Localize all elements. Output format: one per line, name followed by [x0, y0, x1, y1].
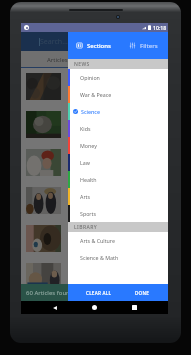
staticText: NEWS — [74, 61, 90, 68]
button[interactable]: Arts & Culture — [68, 232, 168, 249]
button[interactable]: Law — [68, 154, 168, 171]
staticText: Law — [80, 159, 90, 166]
button[interactable]: Back — [48, 301, 61, 314]
button[interactable]: Filters — [118, 32, 168, 59]
staticText: War & Peace — [80, 91, 112, 98]
staticText: Sections — [87, 42, 111, 50]
button[interactable]: War & Peace — [68, 86, 168, 103]
button[interactable]: Science — [68, 103, 168, 120]
staticText: Opinion — [80, 74, 100, 81]
staticText: Filters — [140, 42, 158, 50]
staticText: DONE — [135, 290, 150, 296]
staticText: Science — [81, 108, 100, 115]
staticText: Topics — [122, 56, 140, 64]
button[interactable]: Sections — [68, 32, 118, 59]
button[interactable]: Sports — [68, 205, 168, 222]
button[interactable]: Arts — [68, 188, 168, 205]
button[interactable]: Recents — [128, 301, 141, 314]
button[interactable]: Money — [68, 137, 168, 154]
staticText: Articles — [47, 56, 68, 64]
button[interactable]: Health — [68, 171, 168, 188]
button[interactable]: Science & Math — [68, 249, 168, 266]
staticText: Search… — [40, 37, 68, 47]
staticText: Arts — [80, 193, 91, 200]
button[interactable]: DONE — [131, 284, 154, 301]
staticText: LIBRARY — [74, 224, 98, 231]
button[interactable]: Home — [88, 301, 101, 314]
staticText: Sports — [80, 210, 97, 217]
staticText: Science & Math — [80, 254, 119, 261]
staticText: Arts & Culture — [80, 237, 115, 244]
staticText: 60 Articles found — [26, 289, 74, 297]
staticText: Money — [80, 142, 97, 149]
button[interactable]: Opinion — [68, 69, 168, 86]
staticText: Kids — [80, 125, 91, 132]
staticText: 10:18 — [153, 24, 167, 31]
staticText: CLEAR ALL — [86, 290, 112, 296]
button[interactable]: CLEAR ALL — [82, 284, 116, 301]
button[interactable]: Kids — [68, 120, 168, 137]
staticText: Health — [80, 176, 97, 183]
